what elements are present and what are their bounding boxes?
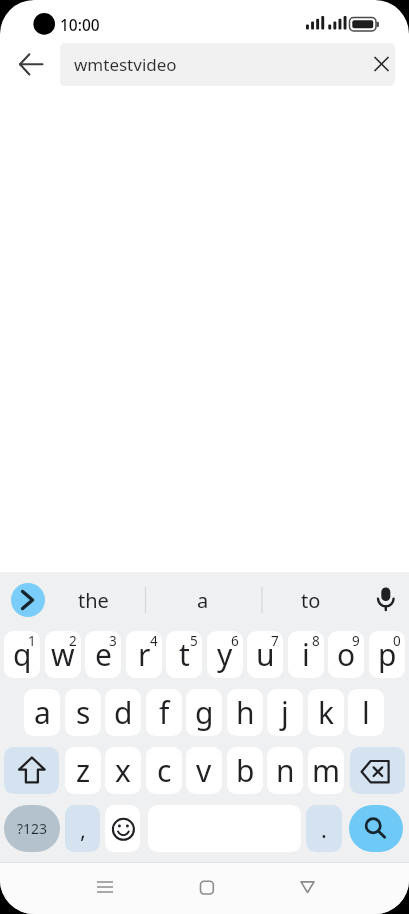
button[interactable]: a (171, 580, 235, 620)
staticText: h (236, 692, 255, 733)
button[interactable]: x (105, 747, 141, 794)
staticText: d (114, 692, 133, 733)
staticText: e (95, 634, 112, 675)
button[interactable]: r (126, 631, 162, 678)
staticText: 3 (109, 632, 117, 650)
staticText: a (34, 692, 51, 733)
staticText: to (301, 587, 321, 614)
button[interactable] (365, 48, 398, 81)
button[interactable]: z (65, 747, 101, 794)
button[interactable] (89, 871, 121, 903)
staticText: b (236, 750, 255, 791)
button[interactable]: e (85, 631, 121, 678)
staticText: wmtestvideo (74, 53, 177, 76)
staticText: the (78, 587, 109, 614)
button[interactable] (4, 747, 59, 794)
button[interactable]: to (279, 580, 343, 620)
button[interactable] (12, 46, 48, 82)
button[interactable]: n (267, 747, 303, 794)
button[interactable]: a (24, 689, 60, 736)
staticText: ?123 (17, 819, 48, 838)
staticText: w (51, 634, 75, 675)
button[interactable]: l (348, 689, 384, 736)
button[interactable]: c (146, 747, 182, 794)
staticText: 1 (28, 632, 36, 650)
staticText: o (337, 634, 356, 675)
button[interactable]: d (105, 689, 141, 736)
button[interactable]: wmtestvideo (60, 43, 395, 86)
staticText: , (80, 814, 86, 844)
staticText: r (138, 634, 151, 675)
staticText: a (197, 587, 209, 614)
button[interactable] (191, 871, 223, 903)
button[interactable]: j (267, 689, 303, 736)
button[interactable]: t (166, 631, 202, 678)
staticText: y (217, 634, 233, 675)
button[interactable]: the (61, 580, 125, 620)
staticText: z (76, 750, 91, 791)
button[interactable] (11, 583, 45, 617)
button[interactable]: m (308, 747, 344, 794)
button[interactable]: b (227, 747, 263, 794)
staticText: t (179, 634, 190, 675)
staticText: n (276, 750, 295, 791)
staticText: c (157, 750, 172, 791)
staticText: k (318, 692, 335, 733)
staticText: s (76, 692, 91, 733)
staticText: u (256, 634, 275, 675)
button[interactable]: f (146, 689, 182, 736)
button[interactable] (349, 805, 403, 852)
staticText: 5 (190, 632, 198, 650)
staticText: m (312, 750, 341, 791)
button[interactable] (105, 805, 140, 852)
button[interactable]: s (65, 689, 101, 736)
staticText: 9 (352, 632, 360, 650)
staticText: p (378, 634, 397, 675)
button[interactable]: u (247, 631, 283, 678)
staticText: j (281, 692, 289, 733)
staticText: i (302, 634, 310, 675)
staticText: 8 (312, 632, 320, 650)
button[interactable]: q (4, 631, 40, 678)
button[interactable]: k (308, 689, 344, 736)
staticText: . (321, 814, 327, 844)
staticText: 7 (271, 632, 279, 650)
staticText: 2 (69, 632, 77, 650)
staticText: 4 (150, 632, 158, 650)
button[interactable]: ?123 (4, 805, 60, 852)
button[interactable]: w (45, 631, 81, 678)
button[interactable] (292, 871, 324, 903)
button[interactable]: g (186, 689, 222, 736)
button[interactable]: i (288, 631, 324, 678)
staticText: v (196, 750, 212, 791)
staticText: x (115, 750, 131, 791)
staticText: 10:00 (60, 14, 100, 35)
staticText: 0 (393, 632, 401, 650)
button[interactable]: h (227, 689, 263, 736)
staticText: l (362, 692, 370, 733)
button[interactable]: v (186, 747, 222, 794)
button[interactable] (350, 747, 405, 794)
staticText: 6 (231, 632, 239, 650)
button[interactable]: . (306, 805, 342, 852)
button[interactable]: , (65, 805, 100, 852)
staticText: g (195, 692, 214, 733)
button[interactable]: p (369, 631, 405, 678)
staticText: q (13, 634, 32, 675)
button[interactable]: y (207, 631, 243, 678)
staticText: f (159, 692, 170, 733)
button[interactable]: o (328, 631, 364, 678)
